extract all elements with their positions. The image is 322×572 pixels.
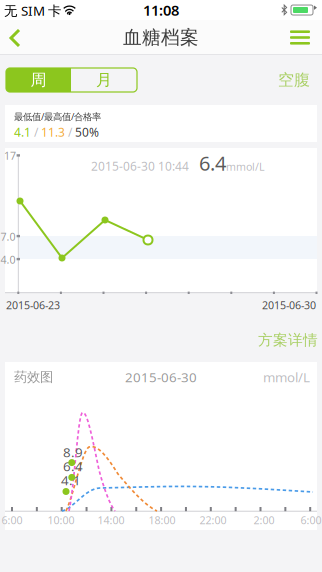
staticText: 血糖档案 [123,26,199,49]
staticText: 6:00 [300,513,321,527]
staticText: 药效图 [14,369,53,385]
staticText: 月 [96,70,112,90]
staticText: / [65,124,75,140]
staticText: 6.4 [189,150,226,176]
button[interactable]: 周 [6,68,71,92]
staticText: 22:00 [199,513,226,527]
staticText: mmol/L [263,368,310,386]
staticText: 7.0 [0,229,15,244]
staticText: 6.4 [63,457,83,475]
staticText: 8.9 [63,443,83,461]
staticText: 4.0 [0,252,15,267]
button[interactable]: Back [4,20,44,55]
staticText: 无 SIM 卡 [4,2,61,19]
staticText: 4.1 [14,124,31,140]
staticText: mmol/L [226,159,265,174]
staticText: 2015-06-30 10:44 [91,158,189,174]
staticText: 11:08 [143,0,179,20]
staticText: 2015-06-23 [6,298,60,312]
button[interactable]: 方案详情 [250,330,318,350]
staticText: 2015-06-30 [125,368,197,386]
staticText: 2:00 [253,513,274,527]
staticText: 17 [4,148,16,163]
button[interactable]: 月 [71,68,137,92]
staticText: 周 [30,70,46,90]
staticText: 18:00 [148,513,175,527]
staticText: 2015-06-30 [262,298,316,312]
staticText: 4.1 [61,471,81,489]
staticText: 空腹 [278,70,310,90]
staticText: 10:00 [47,513,74,527]
staticText: 方案详情 [258,331,318,349]
staticText: 50% [75,124,99,140]
button[interactable]: Menu [280,20,320,55]
staticText: 6:00 [1,513,22,527]
staticText: / [31,124,41,140]
staticText: 11.3 [41,124,65,140]
staticText: 最低值/最高值/合格率 [14,110,101,123]
staticText: 14:00 [97,513,124,527]
